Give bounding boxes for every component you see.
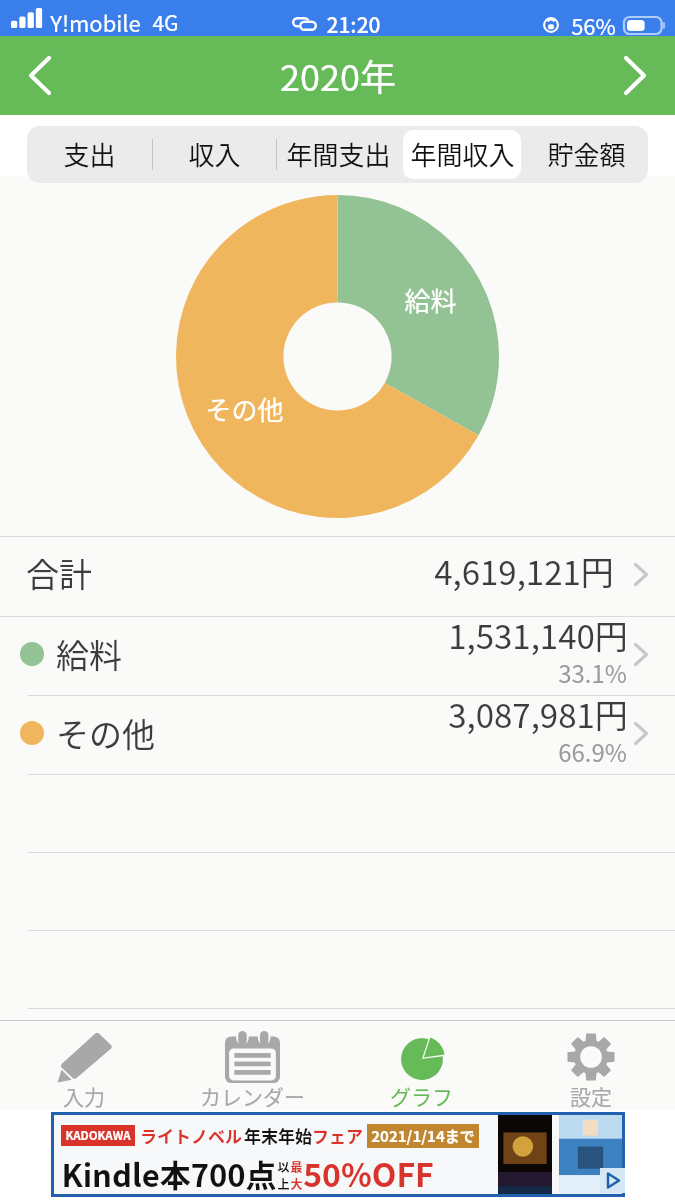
button[interactable]: 入力 <box>0 1021 168 1110</box>
staticText: 50%OFF <box>303 1150 434 1196</box>
staticText: 年末年始 <box>244 1123 312 1148</box>
staticText: 大 <box>290 1175 303 1192</box>
staticText: 年間支出 <box>286 135 391 173</box>
staticText: 設定 <box>570 1081 612 1111</box>
staticText: 合計 <box>26 549 92 597</box>
staticText: 1,531,140円 <box>448 611 628 659</box>
button[interactable]: グラフ <box>337 1021 506 1110</box>
staticText: フェア <box>312 1123 363 1148</box>
staticText: Y!mobile <box>50 6 141 38</box>
button[interactable]: 年間収入 <box>403 130 521 179</box>
staticText: その他 <box>205 390 284 428</box>
staticText: 年間収入 <box>410 135 515 173</box>
button[interactable]: その他 <box>0 696 675 774</box>
button[interactable]: カレンダー <box>168 1021 337 1110</box>
staticText: 給料 <box>56 630 122 678</box>
button[interactable]: Next year <box>595 36 675 115</box>
staticText: 3,087,981円 <box>448 690 628 738</box>
staticText: 4G <box>152 7 179 37</box>
button[interactable]: 合計 <box>0 537 675 616</box>
staticText: 33.1% <box>558 655 627 690</box>
button[interactable]: 支出 <box>30 130 149 179</box>
staticText: KADOKAWA <box>65 1127 131 1144</box>
button[interactable]: 収入 <box>155 130 273 179</box>
staticText: 入力 <box>63 1081 105 1111</box>
staticText: 56% <box>571 9 616 41</box>
staticText: 収入 <box>188 135 241 173</box>
staticText: 66.9% <box>558 734 627 769</box>
staticText: 2020年 <box>280 49 396 101</box>
staticText: 上 <box>277 1175 290 1192</box>
staticText: 給料 <box>404 281 457 319</box>
button[interactable]: 貯金額 <box>527 130 645 179</box>
staticText: 支出 <box>63 135 116 173</box>
button[interactable]: Advertisement <box>51 1112 625 1197</box>
button[interactable]: 給料 <box>0 617 675 695</box>
staticText: 4,619,121円 <box>434 547 614 595</box>
staticText: 最 <box>290 1158 303 1175</box>
button[interactable]: Previous year <box>0 36 80 115</box>
staticText: Kindle本700点 <box>61 1151 277 1196</box>
button[interactable]: 年間支出 <box>279 130 397 179</box>
staticText: 貯金額 <box>547 135 626 173</box>
button[interactable]: 設定 <box>506 1021 675 1110</box>
staticText: カレンダー <box>200 1081 305 1111</box>
staticText: ライトノベル <box>140 1123 242 1148</box>
staticText: 2021/1/14まで <box>371 1125 475 1147</box>
staticText: 21:20 <box>326 9 381 39</box>
staticText: 以 <box>277 1158 290 1175</box>
staticText: グラフ <box>390 1081 453 1111</box>
staticText: その他 <box>56 709 155 757</box>
